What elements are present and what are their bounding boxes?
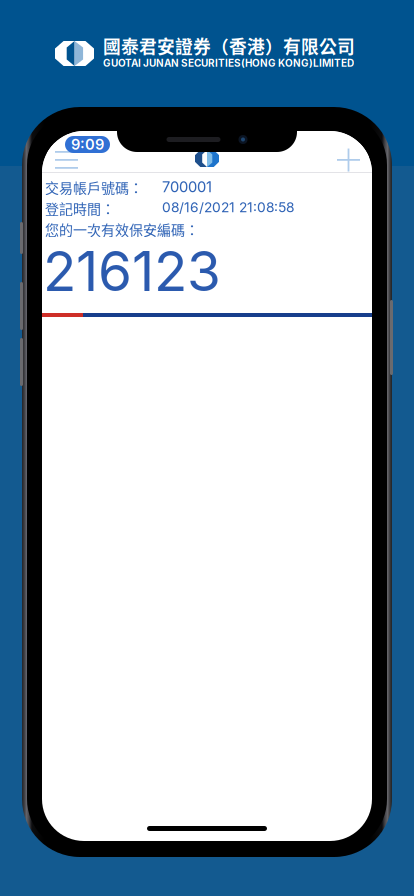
button[interactable]: Menu <box>42 131 82 165</box>
button[interactable]: Add <box>42 131 82 165</box>
staticText: 交易帳戶號碼： <box>45 177 143 197</box>
staticText: 9:09 <box>71 136 104 153</box>
staticText: 700001 <box>162 178 212 196</box>
staticText: 國泰君安證券（香港）有限公司 <box>103 33 355 59</box>
staticText: GUOTAI JUNAN SECURITIES(HONG KONG)LIMITE… <box>103 57 354 69</box>
staticText: 登記時間： <box>45 198 115 218</box>
staticText: 您的一次有效保安編碼： <box>45 219 199 239</box>
staticText: 08/16/2021 21:08:58 <box>162 199 294 216</box>
staticText: 216123 <box>43 238 221 304</box>
